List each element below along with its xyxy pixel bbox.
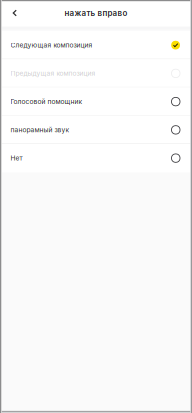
staticText: Голосовой помощник [10, 98, 82, 106]
button[interactable]: Следующая композиция [0, 31, 192, 59]
button[interactable]: панорамный звук [0, 116, 192, 144]
button[interactable]: Back [0, 0, 29, 26]
button[interactable]: Нет [0, 144, 192, 172]
staticText: панорамный звук [10, 126, 69, 134]
staticText: нажать вправо [64, 8, 127, 18]
button[interactable]: Предыдущая композиция [0, 59, 192, 87]
staticText: Нет [10, 154, 22, 162]
staticText: Следующая композиция [10, 41, 92, 49]
button[interactable]: Голосовой помощник [0, 87, 192, 116]
staticText: Предыдущая композиция [10, 69, 95, 77]
